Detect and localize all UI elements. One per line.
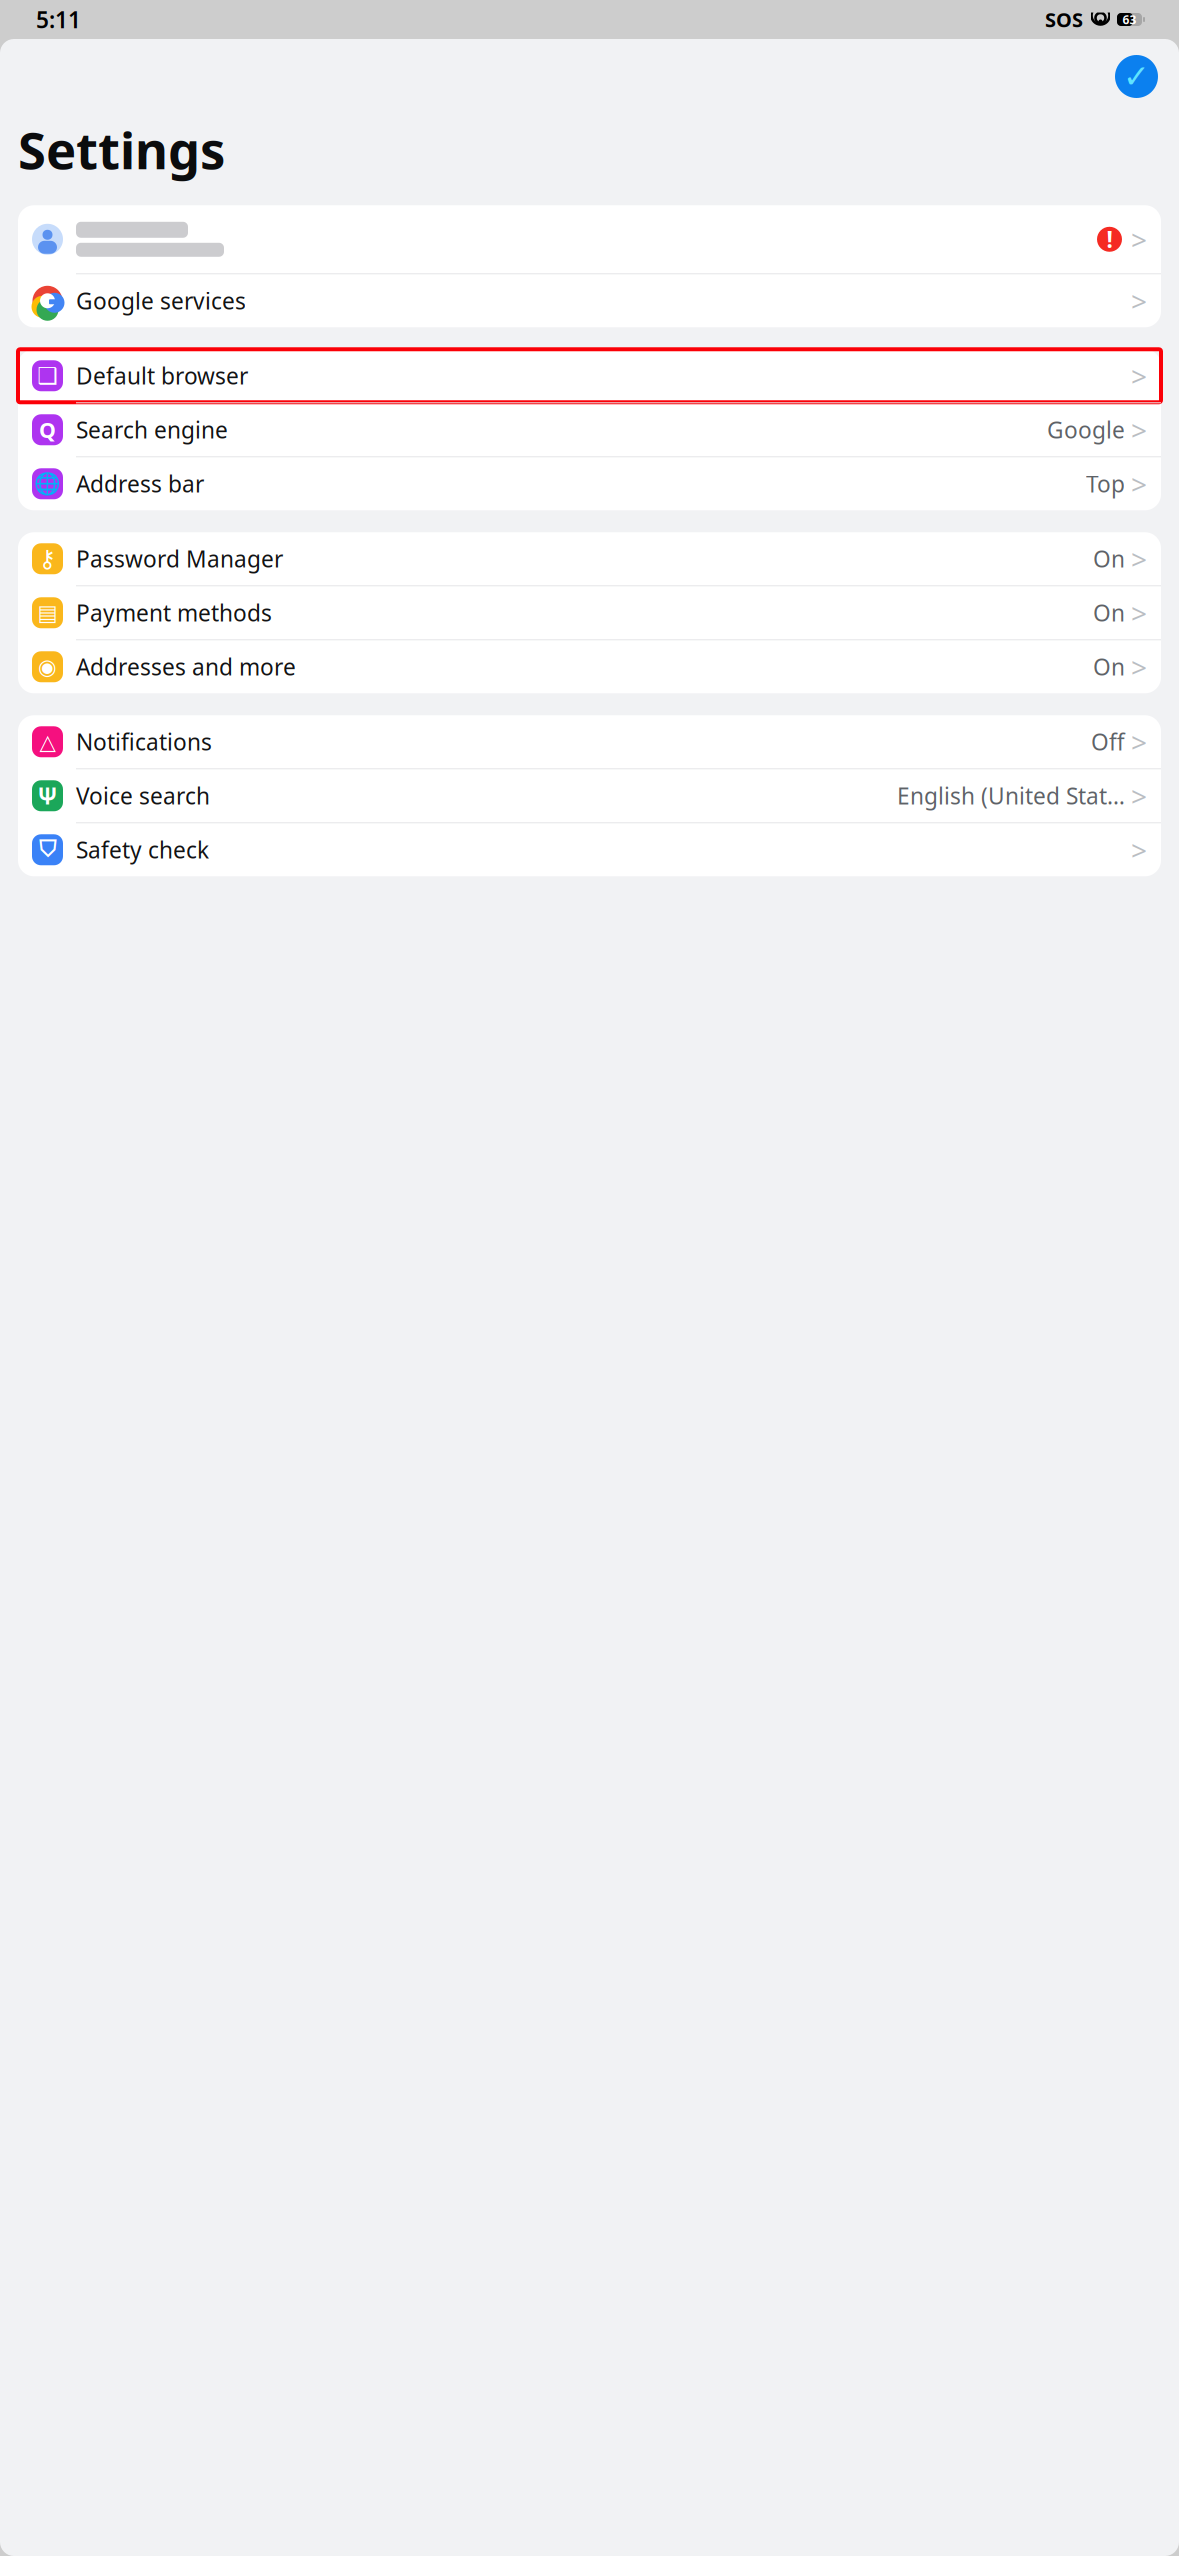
- staticText: ◉: [38, 655, 57, 679]
- staticText: Safety check: [76, 835, 209, 865]
- staticText: 63: [1122, 11, 1136, 27]
- button[interactable]: ❑: [18, 349, 1161, 402]
- staticText: Off: [1091, 727, 1125, 757]
- staticText: 5:11: [36, 4, 81, 34]
- staticText: >: [1131, 594, 1147, 631]
- staticText: Top: [1086, 469, 1125, 499]
- staticText: Ψ: [37, 781, 57, 811]
- button[interactable]: 🌐: [18, 457, 1161, 510]
- staticText: ⚷: [38, 545, 56, 572]
- staticText: Password Manager: [76, 544, 283, 574]
- staticText: Address bar: [76, 469, 204, 499]
- staticText: Notifications: [76, 727, 212, 757]
- button[interactable]: △: [18, 715, 1161, 768]
- staticText: >: [1131, 831, 1147, 868]
- button[interactable]: ◉: [18, 640, 1161, 693]
- staticText: ❑: [37, 363, 57, 389]
- button[interactable]: ▤: [18, 586, 1161, 639]
- staticText: Q: [39, 416, 56, 444]
- button[interactable]: Ψ: [18, 769, 1161, 822]
- staticText: >: [1131, 282, 1147, 319]
- button[interactable]: Q: [18, 403, 1161, 456]
- staticText: >: [1131, 777, 1147, 814]
- staticText: △: [39, 730, 55, 754]
- staticText: Google services: [76, 286, 246, 316]
- staticText: Search engine: [76, 415, 228, 445]
- staticText: !: [1106, 224, 1112, 254]
- staticText: On: [1093, 652, 1125, 682]
- staticText: SOS: [1045, 6, 1083, 33]
- staticText: >: [1131, 221, 1147, 258]
- button[interactable]: Google services: [18, 274, 1161, 327]
- button[interactable]: Done: [1115, 55, 1158, 98]
- button[interactable]: !: [18, 205, 1161, 273]
- staticText: Addresses and more: [76, 652, 296, 682]
- staticText: English (United Stat…: [897, 781, 1125, 811]
- staticText: Settings: [18, 116, 225, 183]
- staticText: >: [1131, 357, 1147, 394]
- staticText: ▤: [37, 601, 57, 625]
- staticText: On: [1093, 544, 1125, 574]
- staticText: >: [1131, 411, 1147, 448]
- button[interactable]: ⛉: [18, 823, 1161, 876]
- staticText: Payment methods: [76, 598, 272, 628]
- button[interactable]: ⚷: [18, 532, 1161, 585]
- staticText: Default browser: [76, 361, 248, 391]
- staticText: >: [1131, 648, 1147, 685]
- staticText: >: [1131, 723, 1147, 760]
- staticText: >: [1131, 465, 1147, 502]
- staticText: ✓: [1123, 58, 1150, 95]
- staticText: 🌐: [34, 472, 61, 496]
- staticText: Voice search: [76, 781, 210, 811]
- staticText: Google: [1047, 415, 1125, 445]
- staticText: >: [1131, 540, 1147, 577]
- staticText: On: [1093, 598, 1125, 628]
- staticText: ⛉: [39, 839, 56, 861]
